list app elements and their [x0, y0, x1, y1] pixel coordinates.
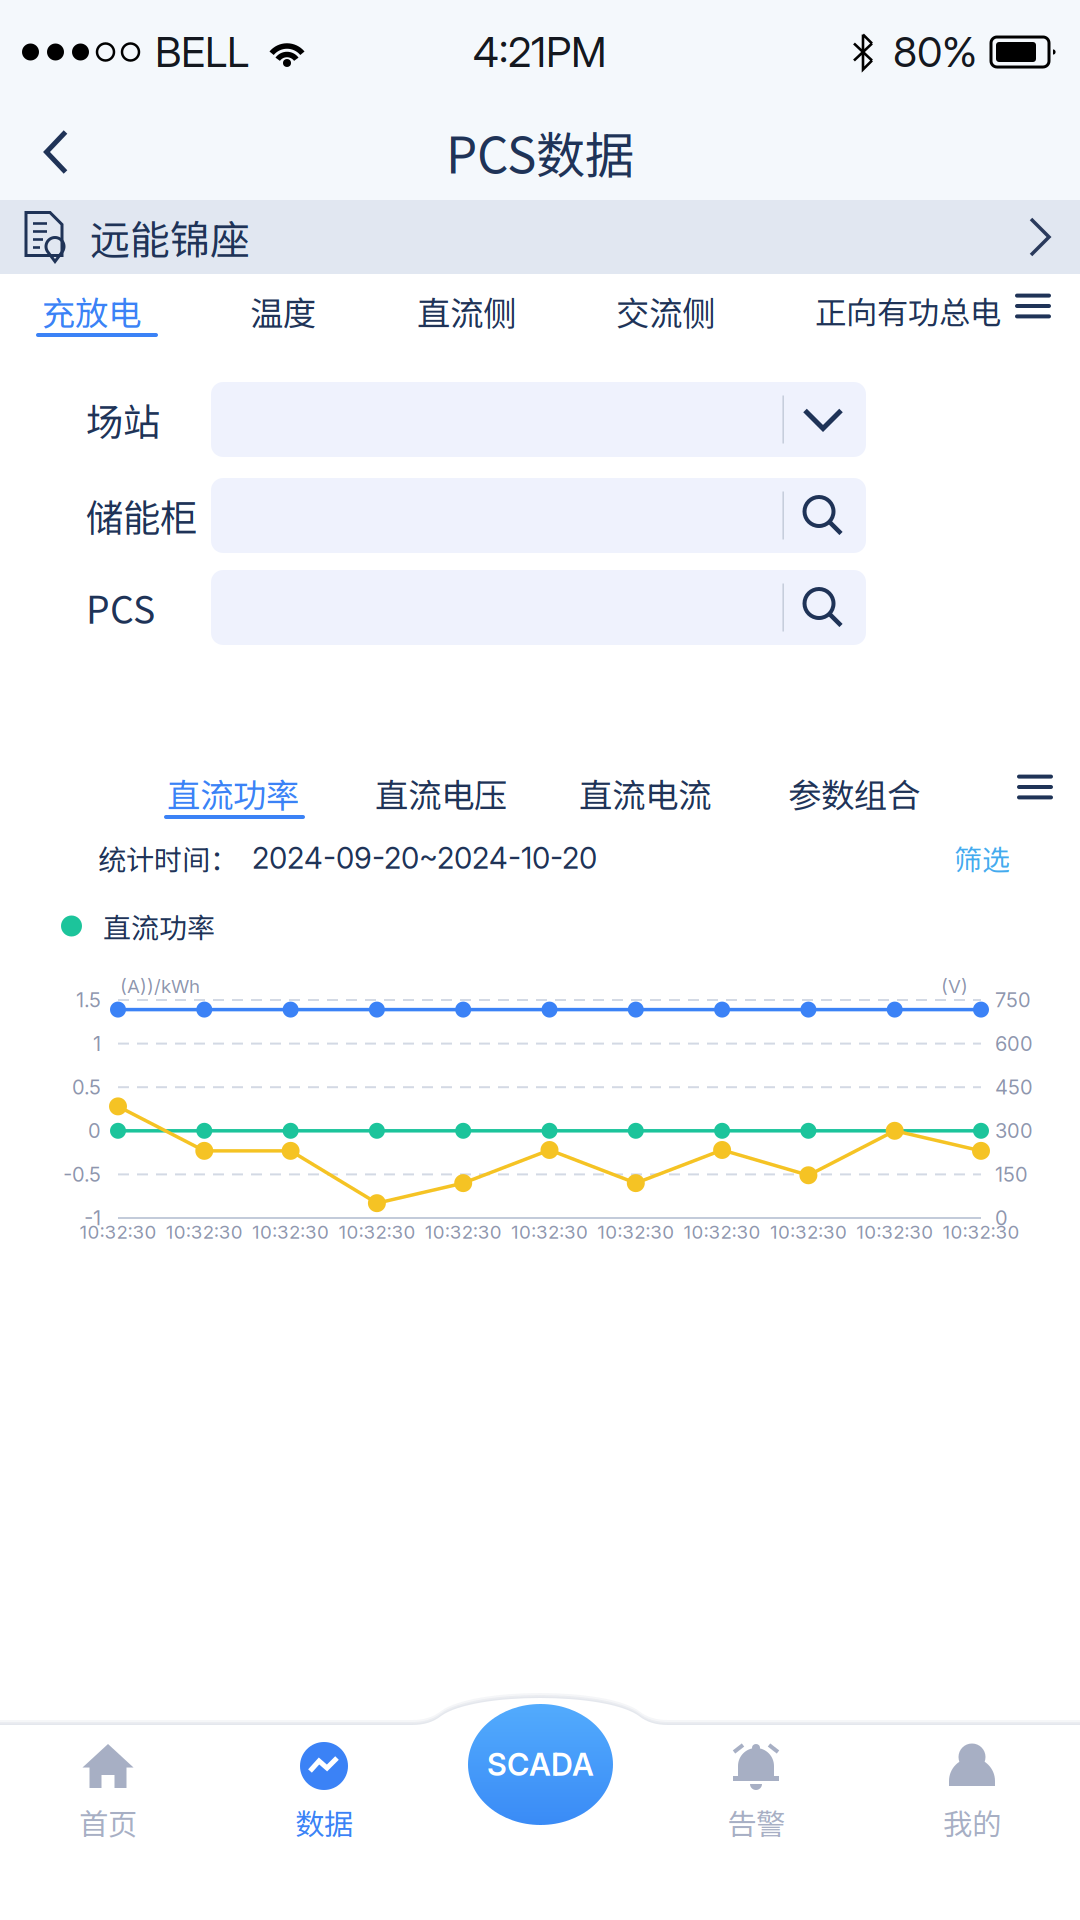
staticText: PCS数据 — [446, 116, 634, 188]
staticText: 300 — [995, 1119, 1033, 1143]
button[interactable] — [211, 570, 866, 645]
staticText: 筛选 — [954, 838, 1010, 878]
button[interactable]: 直流功率 — [167, 769, 302, 821]
staticText: 场站 — [86, 392, 160, 447]
staticText: 温度 — [250, 287, 316, 335]
staticText: 10:32:30 — [166, 1221, 243, 1243]
button[interactable]: 正向有功总电 — [815, 288, 1001, 333]
button[interactable]: 首页 — [0, 1725, 216, 1855]
button[interactable]: Back — [14, 104, 98, 200]
button[interactable]: More chart series — [1013, 770, 1057, 804]
button[interactable]: 数据 — [216, 1725, 432, 1855]
staticText: 远能锦座 — [90, 208, 250, 266]
staticText: 储能柜 — [86, 488, 197, 543]
staticText: 10:32:30 — [252, 1221, 329, 1243]
staticText: PCS — [86, 580, 155, 635]
staticText: (V) — [941, 975, 968, 998]
staticText: -1 — [84, 1206, 101, 1230]
staticText: 数据 — [295, 1801, 353, 1843]
staticText: 10:32:30 — [338, 1221, 415, 1243]
staticText: 1 — [93, 1031, 101, 1056]
staticText: 2024-09-20~2024-10-20 — [252, 840, 597, 876]
staticText: 750 — [995, 988, 1031, 1012]
staticText: 直流侧 — [417, 287, 516, 335]
button[interactable]: 告警 — [648, 1725, 864, 1855]
button[interactable]: 直流电流 — [579, 769, 711, 817]
button[interactable]: 参数组合 — [788, 769, 920, 817]
staticText: 统计时间： — [98, 838, 238, 878]
staticText: 1.5 — [76, 988, 101, 1012]
staticText: 150 — [995, 1162, 1028, 1186]
button[interactable]: 远能锦座 — [0, 200, 1080, 274]
staticText: (A))/kWh — [120, 975, 200, 998]
staticText: 我的 — [943, 1801, 1001, 1843]
button[interactable]: SCADA — [468, 1704, 613, 1825]
staticText: 0.5 — [72, 1075, 101, 1099]
button[interactable]: 我的 — [864, 1725, 1080, 1855]
staticText: 充放电 — [42, 287, 141, 335]
staticText: 450 — [995, 1075, 1033, 1099]
staticText: BELL — [155, 27, 249, 77]
staticText: 10:32:30 — [684, 1221, 761, 1243]
staticText: 0 — [995, 1206, 1008, 1230]
staticText: 参数组合 — [788, 769, 920, 817]
staticText: 直流电流 — [579, 769, 711, 817]
staticText: 0 — [88, 1119, 101, 1143]
staticText: -0.5 — [63, 1162, 101, 1186]
button[interactable]: 直流电压 — [375, 769, 507, 817]
staticText: 10:32:30 — [79, 1221, 156, 1243]
staticText: 600 — [995, 1031, 1033, 1056]
button[interactable]: 直流侧 — [417, 287, 516, 335]
staticText: 10:32:30 — [942, 1221, 1019, 1243]
button[interactable] — [211, 478, 866, 553]
staticText: 正向有功总电 — [815, 288, 1001, 333]
staticText: 10:32:30 — [770, 1221, 847, 1243]
button[interactable]: More metrics — [1013, 289, 1053, 323]
button[interactable]: 交流侧 — [616, 287, 715, 335]
staticText: 直流电压 — [375, 769, 507, 817]
staticText: 直流功率 — [167, 769, 299, 817]
button[interactable]: 筛选 — [954, 838, 1010, 878]
staticText: 交流侧 — [616, 287, 715, 335]
button[interactable]: 温度 — [250, 287, 316, 335]
staticText: 80% — [893, 27, 977, 77]
staticText: 首页 — [79, 1801, 137, 1843]
button[interactable] — [211, 382, 866, 457]
staticText: 10:32:30 — [597, 1221, 674, 1243]
staticText: 直流功率 — [103, 906, 215, 946]
staticText: 告警 — [727, 1801, 785, 1843]
staticText: 4:21PM — [473, 27, 607, 77]
staticText: 10:32:30 — [425, 1221, 502, 1243]
button[interactable]: 充放电 — [42, 287, 154, 339]
staticText: 10:32:30 — [856, 1221, 933, 1243]
staticText: 10:32:30 — [511, 1221, 588, 1243]
staticText: SCADA — [487, 1746, 594, 1783]
